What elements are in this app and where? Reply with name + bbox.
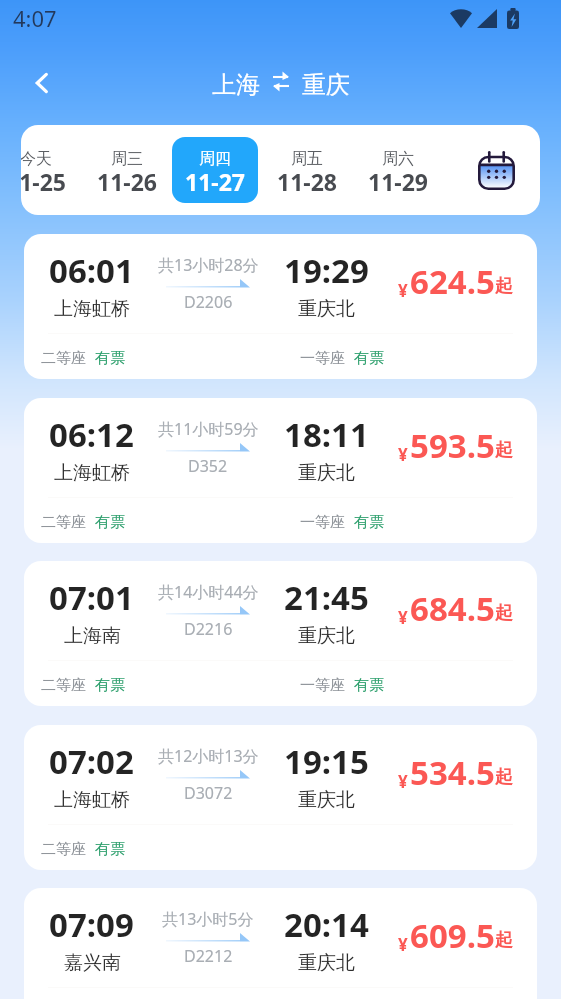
staticText: 上海虹桥 <box>54 297 130 321</box>
staticText: 4:07 <box>13 3 57 33</box>
button[interactable]: 周三 <box>84 137 170 203</box>
staticText: D352 <box>188 455 228 477</box>
button[interactable]: 周四 <box>172 137 258 203</box>
staticText: 624.5 <box>410 259 495 304</box>
staticText: 06:12 <box>49 412 134 457</box>
staticText: 19:15 <box>284 739 369 784</box>
staticText: 重庆 <box>302 70 350 100</box>
staticText: 一等座 <box>300 676 345 695</box>
staticText: 起 <box>495 766 513 789</box>
staticText: 有票 <box>95 513 125 532</box>
staticText: 周三 <box>111 149 143 169</box>
staticText: D2206 <box>184 291 233 313</box>
staticText: 周六 <box>382 149 414 169</box>
button[interactable]: 今天 <box>21 137 79 203</box>
staticText: 一等座 <box>300 513 345 532</box>
button[interactable]: Back <box>18 59 66 107</box>
button[interactable]: 07:02 <box>24 725 537 870</box>
staticText: 二等座 <box>41 840 86 859</box>
staticText: 07:02 <box>49 739 134 784</box>
button[interactable]: Calendar <box>465 139 527 201</box>
staticText: 起 <box>495 602 513 625</box>
staticText: 共13小时5分 <box>162 908 254 930</box>
staticText: 上海南 <box>64 624 121 648</box>
staticText: 共14小时44分 <box>158 581 259 603</box>
staticText: 19:29 <box>284 248 369 293</box>
staticText: 有票 <box>95 349 125 368</box>
staticText: 07:09 <box>49 902 134 947</box>
staticText: 06:01 <box>49 248 134 293</box>
staticText: 有票 <box>354 676 384 695</box>
staticText: ¥ <box>398 443 408 466</box>
staticText: 周四 <box>199 149 231 169</box>
staticText: 重庆北 <box>298 788 355 812</box>
staticText: 二等座 <box>41 349 86 368</box>
button[interactable]: 07:09 <box>24 888 537 999</box>
staticText: 11-29 <box>368 166 428 197</box>
staticText: 593.5 <box>410 423 495 468</box>
staticText: 嘉兴南 <box>64 951 121 975</box>
staticText: 11-25 <box>21 166 66 197</box>
staticText: 上海 <box>212 70 260 100</box>
staticText: 11-26 <box>97 166 157 197</box>
staticText: 20:14 <box>284 902 369 947</box>
staticText: 二等座 <box>41 513 86 532</box>
staticText: 609.5 <box>410 913 495 958</box>
button[interactable]: 周六 <box>355 137 441 203</box>
staticText: D3072 <box>184 782 233 804</box>
staticText: 07:01 <box>49 575 134 620</box>
staticText: 有票 <box>95 840 125 859</box>
staticText: D2212 <box>184 945 233 967</box>
staticText: 起 <box>495 439 513 462</box>
staticText: 上海虹桥 <box>54 788 130 812</box>
staticText: ¥ <box>398 933 408 956</box>
staticText: 11-27 <box>185 166 245 197</box>
staticText: 起 <box>495 929 513 952</box>
button[interactable]: 06:12 <box>24 398 537 543</box>
staticText: 一等座 <box>300 349 345 368</box>
staticText: 重庆北 <box>298 461 355 485</box>
staticText: 21:45 <box>284 575 369 620</box>
staticText: 重庆北 <box>298 951 355 975</box>
staticText: 上海虹桥 <box>54 461 130 485</box>
staticText: 11-28 <box>277 166 337 197</box>
staticText: 534.5 <box>410 750 495 795</box>
staticText: D2216 <box>184 618 233 640</box>
button[interactable]: 06:01 <box>24 234 537 379</box>
staticText: 二等座 <box>41 676 86 695</box>
staticText: 周五 <box>291 149 323 169</box>
staticText: 共11小时59分 <box>158 418 259 440</box>
staticText: 684.5 <box>410 586 495 631</box>
staticText: 今天 <box>21 149 52 169</box>
staticText: 共13小时28分 <box>158 254 259 276</box>
button[interactable]: 周五 <box>264 137 350 203</box>
staticText: 有票 <box>354 349 384 368</box>
staticText: 有票 <box>95 676 125 695</box>
staticText: 共12小时13分 <box>158 745 259 767</box>
staticText: 起 <box>495 275 513 298</box>
staticText: ¥ <box>398 770 408 793</box>
staticText: 重庆北 <box>298 297 355 321</box>
staticText: ¥ <box>398 279 408 302</box>
staticText: 重庆北 <box>298 624 355 648</box>
staticText: 18:11 <box>284 412 369 457</box>
staticText: ¥ <box>398 606 408 629</box>
staticText: 有票 <box>354 513 384 532</box>
button[interactable]: 07:01 <box>24 561 537 706</box>
